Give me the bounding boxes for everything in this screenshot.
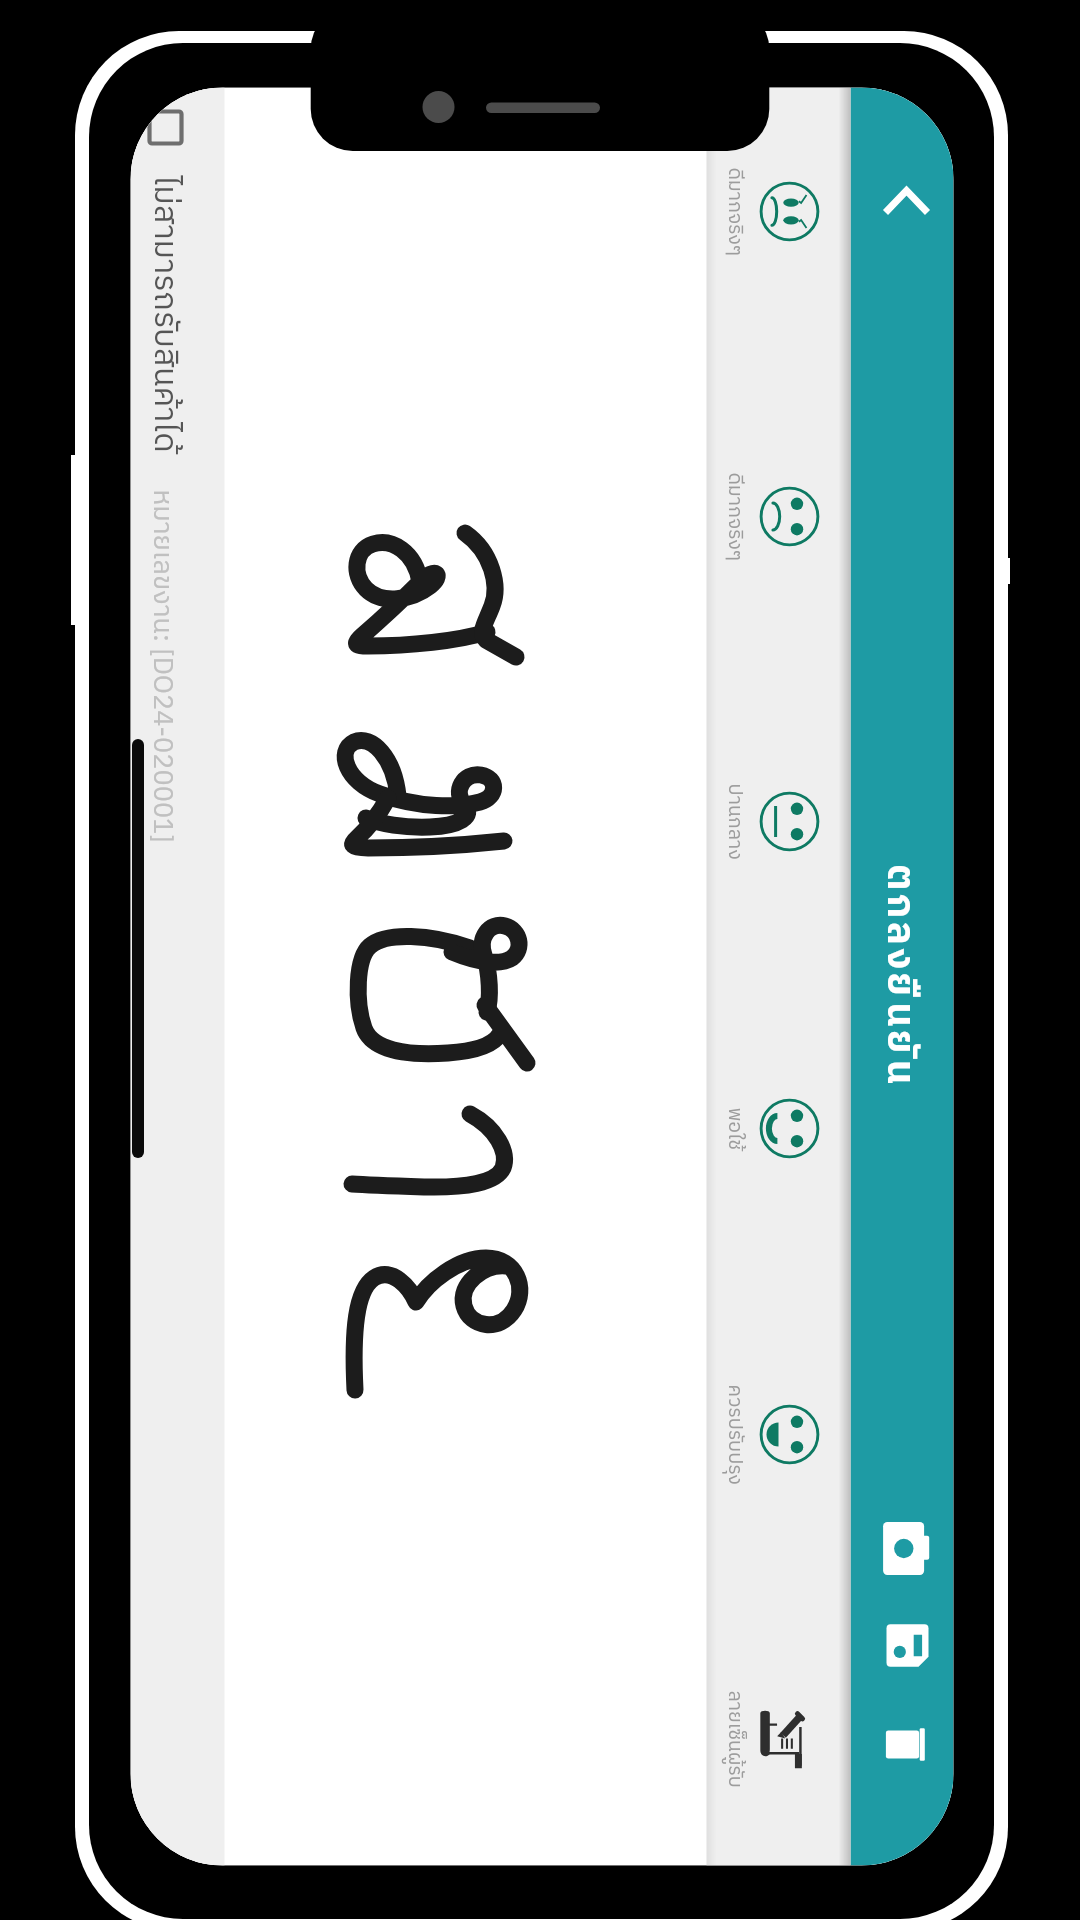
button[interactable]: ดีมากจริงๆ bbox=[706, 139, 850, 283]
staticText: ไม่สามารถรับสินค้าได้ bbox=[137, 175, 190, 453]
button[interactable]: ควรปรับปรุง bbox=[706, 1362, 850, 1506]
button[interactable]: พอใช้ bbox=[706, 1056, 850, 1200]
button[interactable]: ดีมากจริงๆ bbox=[706, 444, 850, 588]
button[interactable]: Save bbox=[850, 1597, 953, 1693]
button[interactable]: Back bbox=[850, 143, 953, 258]
button[interactable]: Card bbox=[850, 1696, 953, 1792]
staticText: ควรปรับปรุง bbox=[718, 1384, 750, 1485]
staticText: หมายเลขงาน: [DO24-020001] bbox=[138, 489, 183, 843]
button[interactable]: ปานกลาง bbox=[706, 749, 850, 893]
staticText: ดีมากจริงๆ bbox=[718, 167, 750, 256]
staticText: พอใช้ bbox=[718, 1107, 750, 1150]
staticText: ตกลงยืนยัน bbox=[866, 864, 929, 1088]
staticText: ดีมากจริงๆ bbox=[718, 472, 750, 561]
button[interactable]: Take photo bbox=[850, 1500, 953, 1596]
staticText: ปานกลาง bbox=[718, 783, 750, 860]
button[interactable]: ลายเซ็นผู้รับ bbox=[706, 1667, 850, 1811]
button[interactable]: Cannot deliver checkbox bbox=[147, 109, 183, 145]
staticText: ลายเซ็นผู้รับ bbox=[718, 1690, 750, 1788]
